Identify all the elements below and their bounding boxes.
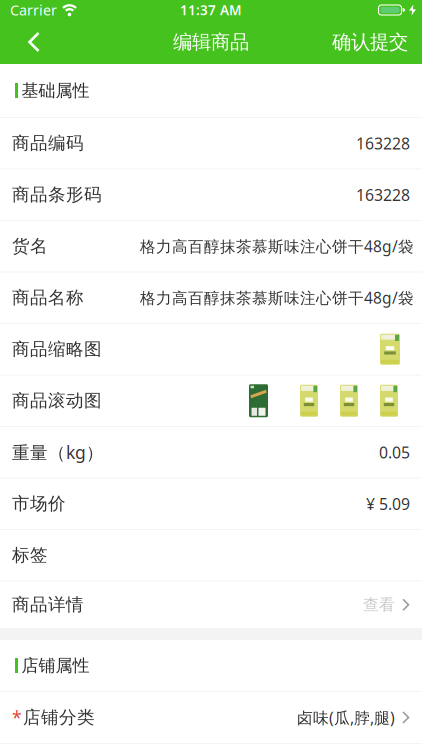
staticText: 查看 <box>363 595 395 615</box>
button[interactable]: 返回 <box>0 31 50 52</box>
staticText: 卤味(瓜,脖,腿) <box>297 707 395 728</box>
staticText: 货名 <box>12 235 48 257</box>
staticText: 商品滚动图 <box>12 390 102 412</box>
staticText: 重量（kg） <box>12 440 104 464</box>
staticText: 市场价 <box>12 493 66 515</box>
staticText: 商品名称 <box>12 287 84 309</box>
staticText: 基础属性 <box>21 80 89 101</box>
staticText: 确认提交 <box>332 30 408 54</box>
staticText: 标签 <box>12 544 48 566</box>
staticText: * <box>12 706 22 729</box>
button[interactable]: * <box>0 691 422 744</box>
staticText: 0.05 <box>379 441 410 463</box>
staticText: 格力高百醇抹茶慕斯味注心饼干48g/袋 <box>140 236 414 257</box>
staticText: 163228 <box>356 132 410 154</box>
button[interactable]: 商品详情 <box>0 580 422 628</box>
staticText: 商品编码 <box>12 132 84 154</box>
staticText: 商品条形码 <box>12 184 102 206</box>
staticText: 11:37 AM <box>180 1 242 19</box>
button[interactable]: 商品缩略图 <box>0 323 422 374</box>
staticText: Carrier <box>10 0 57 20</box>
staticText: 商品缩略图 <box>12 338 102 360</box>
button[interactable]: 商品滚动图 <box>0 374 422 426</box>
staticText: 163228 <box>356 184 410 205</box>
staticText: 格力高百醇抹茶慕斯味注心饼干48g/袋 <box>140 287 414 308</box>
button[interactable]: 确认提交 <box>332 30 422 54</box>
staticText: 商品详情 <box>12 594 84 616</box>
staticText: 店铺分类 <box>23 706 95 728</box>
staticText: ¥ 5.09 <box>366 493 410 514</box>
staticText: 店铺属性 <box>21 655 89 676</box>
staticText: 编辑商品 <box>173 30 249 54</box>
